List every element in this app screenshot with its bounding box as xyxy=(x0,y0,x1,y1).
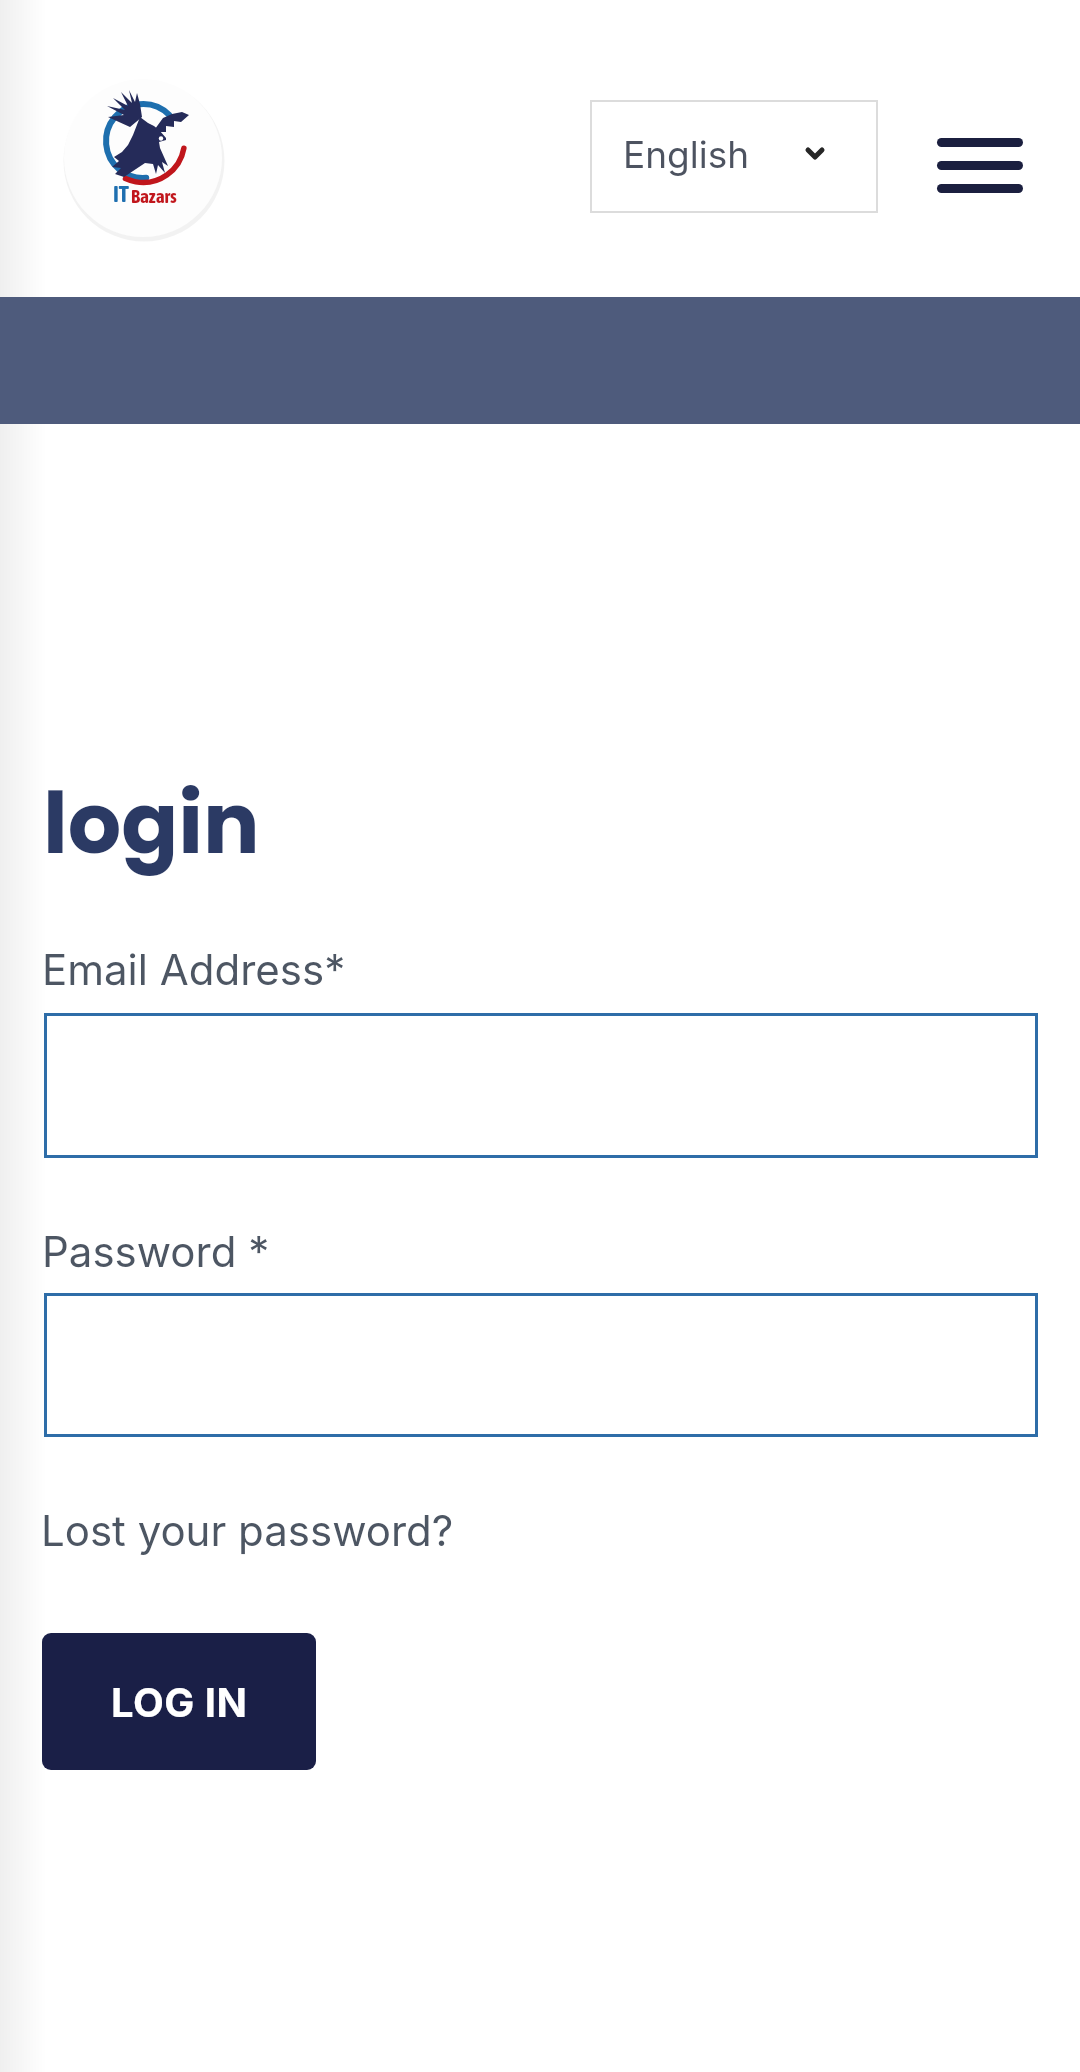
staticText: IT xyxy=(113,181,129,207)
staticText: Bazars xyxy=(131,185,177,207)
button[interactable]: English xyxy=(590,100,878,213)
button[interactable] xyxy=(44,1293,1038,1437)
button[interactable] xyxy=(928,128,1032,204)
button[interactable]: LOG IN xyxy=(42,1633,316,1770)
button[interactable] xyxy=(44,1013,1038,1158)
staticText: English xyxy=(623,132,750,177)
staticText: Password * xyxy=(42,1226,270,1277)
staticText: LOG IN xyxy=(111,1678,248,1726)
staticText: Email Address* xyxy=(42,944,346,995)
button[interactable]: Lost your password? xyxy=(41,1505,454,1556)
button[interactable]: IT xyxy=(62,77,226,241)
staticText: login xyxy=(43,765,260,883)
